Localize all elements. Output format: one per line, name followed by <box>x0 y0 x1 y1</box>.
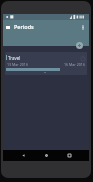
button[interactable]: Recent apps <box>65 151 74 160</box>
button[interactable]: Home <box>42 151 51 160</box>
button[interactable]: Add period <box>76 42 83 49</box>
button[interactable]: More options <box>79 23 87 31</box>
button[interactable]: Navigation menu <box>4 23 12 31</box>
button[interactable]: Travel <box>5 52 87 75</box>
staticText: 13 Mar 2016 <box>7 62 28 67</box>
staticText: Travel <box>8 55 21 61</box>
staticText: 16 Mar 2016 <box>64 62 85 67</box>
staticText: Periods <box>14 23 34 30</box>
button[interactable]: Back <box>19 151 28 160</box>
